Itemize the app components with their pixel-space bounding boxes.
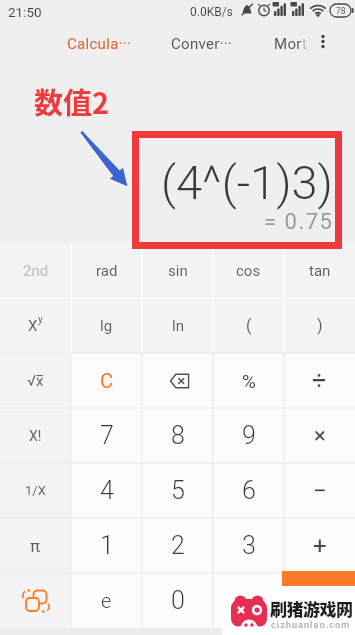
- button[interactable]: lg: [71, 298, 142, 353]
- button[interactable]: 1/X: [0, 463, 71, 518]
- staticText: sin: [168, 262, 188, 280]
- button[interactable]: 0: [142, 573, 213, 628]
- button[interactable]: sin: [142, 243, 213, 298]
- staticText: X: [28, 317, 38, 335]
- button[interactable]: 8: [142, 408, 213, 463]
- staticText: 2nd: [23, 262, 49, 280]
- staticText: 0.0KB/s: [190, 5, 233, 19]
- button[interactable]: 6: [213, 463, 284, 518]
- staticText: =: [312, 586, 327, 616]
- button[interactable]: 3: [213, 518, 284, 573]
- button[interactable]: π: [0, 518, 71, 573]
- button[interactable]: ln: [142, 298, 213, 353]
- button[interactable]: C: [71, 353, 142, 408]
- staticText: ): [317, 316, 323, 335]
- staticText: 1/X: [25, 483, 46, 498]
- staticText: 3: [242, 531, 256, 560]
- button[interactable]: ÷: [284, 353, 355, 408]
- button[interactable]: −: [284, 463, 355, 518]
- button[interactable]: .: [213, 573, 284, 628]
- staticText: tan: [309, 262, 331, 280]
- staticText: = 0.75: [264, 209, 334, 235]
- button[interactable]: X!: [0, 408, 71, 463]
- button[interactable]: [142, 353, 213, 408]
- staticText: rad: [96, 262, 118, 280]
- button[interactable]: X: [0, 298, 71, 353]
- button[interactable]: rad: [71, 243, 142, 298]
- staticText: %: [242, 370, 256, 392]
- staticText: −: [313, 477, 327, 505]
- staticText: y: [38, 314, 43, 326]
- staticText: 0: [171, 586, 185, 615]
- staticText: t: [302, 35, 307, 53]
- staticText: 7: [100, 421, 114, 450]
- staticText: 4: [100, 476, 114, 505]
- staticText: √x̅: [27, 372, 44, 390]
- staticText: 78: [336, 6, 346, 16]
- button[interactable]: Calcula···: [59, 28, 139, 60]
- button[interactable]: %: [213, 353, 284, 408]
- staticText: .: [246, 586, 252, 615]
- staticText: ×: [314, 423, 326, 449]
- button[interactable]: (: [213, 298, 284, 353]
- staticText: (: [246, 316, 252, 335]
- button[interactable]: ): [284, 298, 355, 353]
- button[interactable]: 7: [71, 408, 142, 463]
- staticText: 5: [171, 476, 185, 505]
- staticText: +: [313, 532, 327, 560]
- staticText: X!: [29, 428, 42, 444]
- button[interactable]: ×: [284, 408, 355, 463]
- staticText: lg: [100, 317, 113, 335]
- staticText: (4^(-1)3): [161, 155, 333, 210]
- staticText: 8: [171, 421, 185, 450]
- button[interactable]: e: [71, 573, 142, 628]
- button[interactable]: cos: [213, 243, 284, 298]
- staticText: ln: [172, 317, 184, 335]
- button[interactable]: 2: [142, 518, 213, 573]
- staticText: e: [101, 589, 112, 612]
- button[interactable]: Conver···: [162, 28, 242, 60]
- staticText: cizhuanlao.com: [271, 619, 351, 630]
- staticText: C: [100, 369, 114, 392]
- staticText: 1: [100, 531, 114, 560]
- staticText: 9: [242, 421, 256, 450]
- staticText: π: [30, 536, 41, 556]
- staticText: 21:50: [8, 4, 42, 20]
- button[interactable]: 2nd: [0, 243, 71, 298]
- button[interactable]: 5: [142, 463, 213, 518]
- staticText: ÷: [312, 366, 327, 395]
- button[interactable]: 1: [71, 518, 142, 573]
- staticText: Mor: [274, 35, 302, 53]
- button[interactable]: +: [284, 518, 355, 573]
- button[interactable]: 9: [213, 408, 284, 463]
- staticText: cos: [236, 262, 261, 280]
- button[interactable]: =: [284, 573, 355, 628]
- button[interactable]: [314, 33, 332, 55]
- button[interactable]: Mor: [258, 28, 322, 60]
- button[interactable]: √x̅: [0, 353, 71, 408]
- staticText: Conver···: [171, 35, 233, 53]
- button[interactable]: 4: [71, 463, 142, 518]
- button[interactable]: tan: [284, 243, 355, 298]
- staticText: 2: [171, 531, 185, 560]
- staticText: 6: [242, 476, 256, 505]
- staticText: Calcula···: [67, 35, 132, 53]
- staticText: 刷猪游戏网: [270, 596, 353, 620]
- button[interactable]: [0, 573, 71, 628]
- staticText: 数值2: [34, 80, 110, 122]
